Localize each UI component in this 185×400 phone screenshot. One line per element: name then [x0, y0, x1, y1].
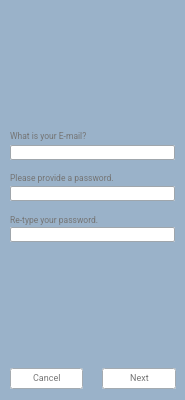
button[interactable]: Cancel: [10, 368, 83, 389]
staticText: Cancel: [33, 373, 61, 384]
button[interactable]: [10, 145, 175, 160]
staticText: Re-type your password.: [10, 215, 99, 225]
staticText: Next: [130, 373, 149, 384]
staticText: Please provide a password.: [10, 173, 114, 183]
button[interactable]: [10, 186, 175, 201]
button[interactable]: [10, 227, 175, 242]
button[interactable]: Next: [102, 368, 176, 389]
staticText: What is your E-mail?: [10, 131, 87, 141]
